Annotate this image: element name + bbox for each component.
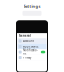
staticText: Account xyxy=(23,39,34,43)
button[interactable]: Privacy xyxy=(17,55,46,60)
staticText: Privacy xyxy=(23,56,31,59)
button[interactable]: Appearance xyxy=(17,44,46,49)
staticText: Notifications xyxy=(23,48,38,56)
button[interactable]: Account xyxy=(17,38,46,44)
staticText: Appearance xyxy=(23,45,39,48)
button[interactable]: Notifications xyxy=(17,49,46,55)
staticText: Settings xyxy=(23,3,40,9)
staticText: General xyxy=(19,34,31,37)
